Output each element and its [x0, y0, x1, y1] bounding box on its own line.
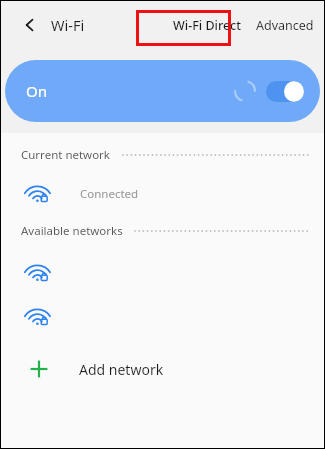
- staticText: On: [26, 81, 47, 101]
- button[interactable]: Wi-Fi network: [1, 295, 324, 339]
- button[interactable]: Wi-Fi network: [1, 251, 324, 295]
- button[interactable]: Wi-Fi: [51, 15, 85, 35]
- button[interactable]: Back: [19, 14, 41, 36]
- button[interactable]: Wi-Fi toggle: [266, 81, 304, 102]
- staticText: Available networks: [21, 223, 123, 239]
- staticText: Current network: [21, 147, 111, 163]
- button[interactable]: Wi-Fi Direct: [173, 17, 242, 34]
- button[interactable]: Advanced: [256, 17, 314, 34]
- staticText: Connected: [80, 186, 139, 202]
- button[interactable]: Add network: [1, 349, 324, 389]
- staticText: Add network: [79, 360, 164, 379]
- button[interactable]: On: [5, 60, 320, 122]
- button[interactable]: Connected: [1, 173, 324, 215]
